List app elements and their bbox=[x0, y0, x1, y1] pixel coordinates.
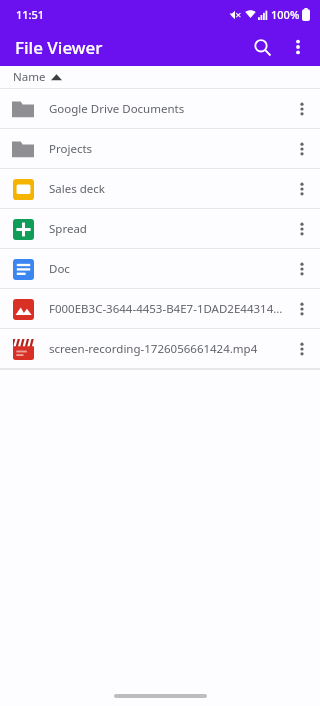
staticText: 11:51 bbox=[16, 7, 45, 22]
staticText: File Viewer bbox=[15, 36, 103, 59]
button[interactable]: More options bbox=[280, 29, 316, 65]
staticText: F000EB3C-3644-4453-B4E7-1DAD2E44314… bbox=[49, 301, 284, 317]
button[interactable]: Sales deck bbox=[0, 169, 320, 208]
staticText: screen-recording-1726056661424.mp4 bbox=[49, 341, 284, 357]
button[interactable]: Doc bbox=[0, 249, 320, 288]
button[interactable]: Projects bbox=[0, 129, 320, 168]
button[interactable]: More options for Sales deck bbox=[284, 171, 320, 207]
button[interactable]: F000EB3C-3644-4453-B4E7-1DAD2E44314… bbox=[0, 289, 320, 328]
button[interactable]: Spread bbox=[0, 209, 320, 248]
button[interactable]: More options for F000EB3C-3644-4453-B4E7… bbox=[284, 291, 320, 327]
button[interactable]: More options for Projects bbox=[284, 131, 320, 167]
button[interactable]: More options for Doc bbox=[284, 251, 320, 287]
button[interactable]: More options for Google Drive Documents bbox=[284, 91, 320, 127]
staticText: Sales deck bbox=[49, 181, 284, 197]
staticText: Google Drive Documents bbox=[49, 101, 284, 117]
button[interactable]: More options for Spread bbox=[284, 211, 320, 247]
button[interactable]: More options for screen-recording-172605… bbox=[284, 331, 320, 367]
button[interactable]: Google Drive Documents bbox=[0, 89, 320, 128]
staticText: 100% bbox=[271, 7, 300, 22]
button[interactable]: screen-recording-1726056661424.mp4 bbox=[0, 329, 320, 368]
staticText: Name bbox=[13, 69, 46, 85]
staticText: Spread bbox=[49, 221, 284, 237]
button[interactable]: Search bbox=[244, 29, 280, 65]
staticText: Projects bbox=[49, 141, 284, 157]
staticText: Doc bbox=[49, 261, 284, 277]
button[interactable]: Name bbox=[0, 66, 320, 88]
